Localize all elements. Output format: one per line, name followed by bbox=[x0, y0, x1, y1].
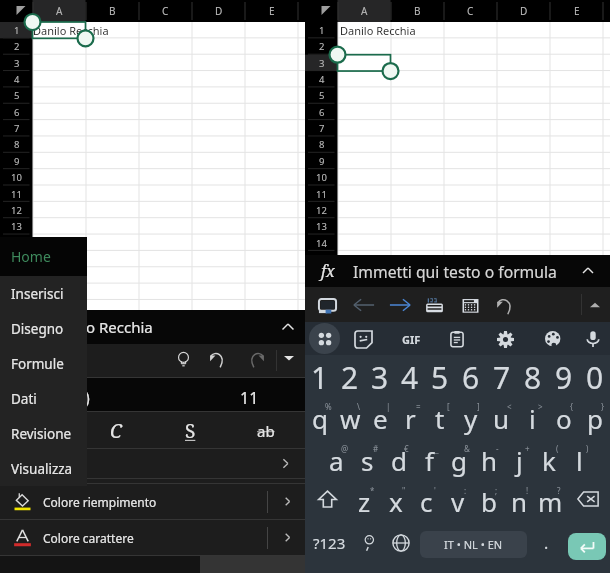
button[interactable]: Undo bbox=[491, 291, 519, 319]
button[interactable]: ?123 bbox=[305, 520, 353, 565]
button[interactable]: Enter bbox=[568, 533, 606, 560]
button[interactable]: Undo bbox=[203, 344, 233, 374]
button[interactable]: More options bbox=[275, 344, 303, 372]
button[interactable]: ) bbox=[564, 436, 594, 478]
button[interactable]: € bbox=[383, 436, 414, 478]
button[interactable]: Backspace bbox=[566, 478, 610, 520]
button[interactable]: Voice input bbox=[579, 325, 607, 353]
button[interactable]: = bbox=[395, 394, 425, 436]
staticText: 4 bbox=[401, 357, 419, 396]
button[interactable]: 6 bbox=[455, 357, 486, 396]
button[interactable]: } bbox=[579, 394, 610, 436]
button[interactable]: _ bbox=[414, 436, 444, 478]
staticText: z bbox=[358, 484, 371, 519]
button[interactable]: Language bbox=[385, 520, 416, 565]
button[interactable]: ! bbox=[504, 478, 535, 520]
button[interactable]: o Recchia bbox=[0, 310, 305, 344]
staticText: Danilo Recchia bbox=[33, 23, 109, 38]
button[interactable]: 7 bbox=[486, 357, 517, 396]
button[interactable]: Disegno bbox=[0, 311, 87, 346]
button[interactable]: ( bbox=[534, 436, 564, 478]
button[interactable]: @ bbox=[321, 436, 352, 478]
button[interactable]: Revisione bbox=[0, 416, 87, 451]
button[interactable]: Collapse bbox=[582, 292, 608, 318]
staticText: 11 bbox=[11, 188, 22, 201]
button[interactable]: Calendar bbox=[456, 291, 484, 319]
staticText: % bbox=[325, 401, 332, 412]
button[interactable]: fx bbox=[305, 255, 610, 287]
button[interactable]: : bbox=[442, 478, 473, 520]
button[interactable]: 2 bbox=[335, 357, 365, 396]
staticText: Dati bbox=[11, 390, 37, 408]
button[interactable]: { bbox=[548, 394, 579, 436]
staticText: Immetti qui testo o formula bbox=[353, 261, 557, 282]
staticText: # bbox=[373, 443, 379, 454]
button[interactable]: & bbox=[444, 436, 474, 478]
staticText: @ bbox=[341, 443, 349, 454]
staticText: > bbox=[538, 401, 543, 412]
button[interactable]: 4 bbox=[395, 357, 425, 396]
button[interactable]: 0 bbox=[579, 357, 610, 396]
button[interactable]: Redo bbox=[241, 344, 271, 374]
button[interactable]: Dati bbox=[0, 381, 87, 416]
button[interactable]: \ bbox=[335, 394, 365, 436]
button[interactable]: ; bbox=[473, 478, 504, 520]
staticText: o Recchia bbox=[86, 317, 153, 337]
staticText: Inserisci bbox=[11, 285, 64, 303]
staticText: 4 bbox=[14, 73, 20, 86]
button[interactable]: * bbox=[349, 478, 380, 520]
button[interactable]: Forward bbox=[386, 291, 414, 319]
button[interactable]: S bbox=[153, 412, 228, 448]
button[interactable]: - bbox=[474, 436, 504, 478]
button[interactable]: ' bbox=[411, 478, 442, 520]
button[interactable]: 5 bbox=[425, 357, 455, 396]
button[interactable]: < bbox=[486, 394, 517, 436]
staticText: s bbox=[361, 443, 374, 478]
button[interactable]: Clipboard bbox=[443, 325, 471, 353]
button[interactable]: | bbox=[365, 394, 395, 436]
button[interactable]: + bbox=[504, 436, 534, 478]
button[interactable]: Back bbox=[350, 291, 378, 319]
button[interactable]: > bbox=[517, 394, 548, 436]
staticText: ? bbox=[557, 485, 561, 496]
button[interactable]: " bbox=[380, 478, 411, 520]
button[interactable]: GIF bbox=[396, 324, 426, 354]
button[interactable]: Shift bbox=[305, 478, 349, 520]
button[interactable]: # bbox=[352, 436, 383, 478]
button[interactable]: 3 bbox=[365, 357, 395, 396]
button[interactable]: % bbox=[305, 394, 335, 436]
button[interactable]: . bbox=[531, 520, 561, 565]
button[interactable]: Stickers bbox=[349, 325, 377, 353]
button[interactable]: Numeric keyboard bbox=[420, 291, 448, 319]
staticText: " bbox=[402, 485, 406, 496]
button[interactable] bbox=[0, 449, 305, 478]
button[interactable]: Visualizza bbox=[0, 451, 87, 486]
button[interactable]: Inserisci bbox=[0, 276, 87, 311]
button[interactable]: Idea bbox=[168, 344, 198, 374]
button[interactable]: Themes bbox=[539, 325, 567, 353]
button[interactable]: ? bbox=[535, 478, 566, 520]
staticText: E bbox=[269, 4, 275, 18]
staticText: ?123 bbox=[313, 533, 346, 553]
staticText: ab bbox=[257, 421, 275, 441]
button[interactable]: Colore carattere bbox=[0, 520, 305, 555]
button[interactable]: C bbox=[78, 412, 153, 448]
button[interactable]: Colore riempimento bbox=[0, 484, 305, 519]
button[interactable]: 9 bbox=[548, 357, 579, 396]
button[interactable]: Emoji bbox=[353, 520, 385, 565]
button[interactable]: ab bbox=[228, 412, 304, 448]
button[interactable]: 1 bbox=[305, 357, 335, 396]
button[interactable]: 8 bbox=[517, 357, 548, 396]
staticText: 12 bbox=[11, 204, 22, 217]
button[interactable]: Apps bbox=[309, 323, 340, 354]
button[interactable]: Screen bbox=[313, 291, 341, 319]
button[interactable]: 11 bbox=[227, 387, 272, 409]
button[interactable]: IT • NL • EN bbox=[420, 531, 527, 558]
button[interactable]: Home bbox=[0, 237, 87, 276]
button[interactable]: ] bbox=[455, 394, 486, 436]
button[interactable]: Settings bbox=[491, 325, 519, 353]
button[interactable]: Formule bbox=[0, 346, 87, 381]
button[interactable]: [ bbox=[425, 394, 455, 436]
staticText: r bbox=[405, 401, 416, 436]
